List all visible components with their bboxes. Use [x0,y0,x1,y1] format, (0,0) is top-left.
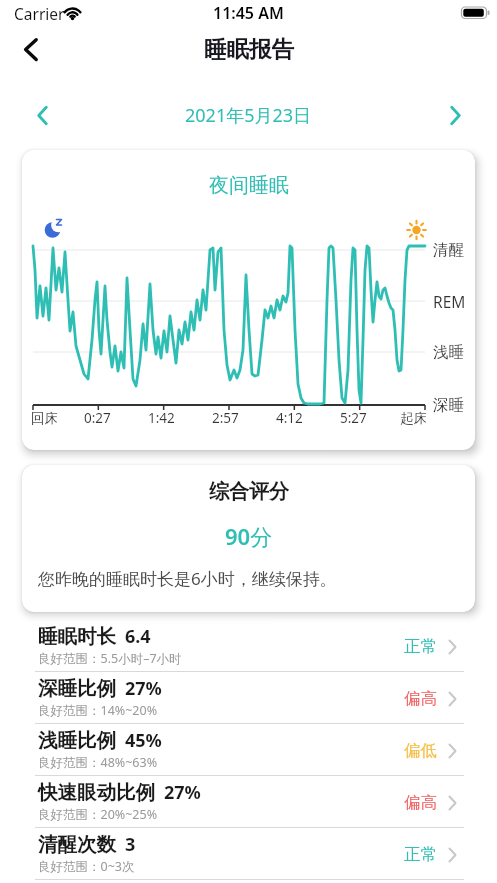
staticText: 良好范围：0~3次 [38,858,135,875]
button[interactable] [24,97,60,133]
button[interactable]: 浅睡比例 [22,724,475,776]
staticText: 6.4 [125,624,151,649]
staticText: 良好范围：14%~20% [38,702,158,719]
staticText: 良好范围：5.5小时–7小时 [38,650,182,667]
button[interactable] [437,97,473,133]
button[interactable]: 快速眼动比例 [22,776,475,828]
staticText: 2:57 [212,409,239,427]
staticText: 5:27 [340,409,367,427]
staticText: 正常 [404,844,437,865]
staticText: 90分 [225,521,273,549]
button[interactable]: 睡眠时长 [22,620,475,672]
staticText: 45% [125,728,162,753]
staticText: 夜间睡眠 [209,173,289,198]
staticText: 良好范围：20%~25% [38,806,158,823]
staticText: 您昨晚的睡眠时长是6小时，继续保持。 [38,567,337,589]
staticText: 良好范围：48%~63% [38,754,158,771]
staticText: 清醒次数 [38,832,116,857]
staticText: 清醒 [433,240,464,260]
staticText: 快速眼动比例 [38,780,155,805]
staticText: 0:27 [84,409,111,427]
staticText: 浅睡 [433,342,464,362]
staticText: 27% [125,676,162,701]
staticText: 2021年5月23日 [185,103,312,128]
staticText: 浅睡比例 [38,728,116,753]
staticText: 正常 [404,636,437,657]
button[interactable]: 清醒次数 [22,828,475,880]
staticText: 睡眠报告 [204,35,294,63]
staticText: REM [433,291,466,312]
staticText: 深睡 [433,395,464,415]
staticText: 1:42 [148,409,175,427]
staticText: 偏高 [404,688,437,709]
staticText: 起床 [400,410,427,427]
staticText: 偏高 [404,792,437,813]
staticText: 回床 [31,410,58,427]
staticText: 11:45 AM [213,2,284,24]
staticText: 偏低 [404,740,437,761]
staticText: 3 [125,832,136,857]
staticText: 睡眠时长 [38,624,116,649]
staticText: 综合评分 [209,479,289,503]
button[interactable] [13,30,47,68]
button[interactable]: 深睡比例 [22,672,475,724]
staticText: 27% [164,780,201,805]
staticText: 深睡比例 [38,676,116,701]
staticText: 4:12 [276,409,303,427]
staticText: Carrier [14,3,65,24]
